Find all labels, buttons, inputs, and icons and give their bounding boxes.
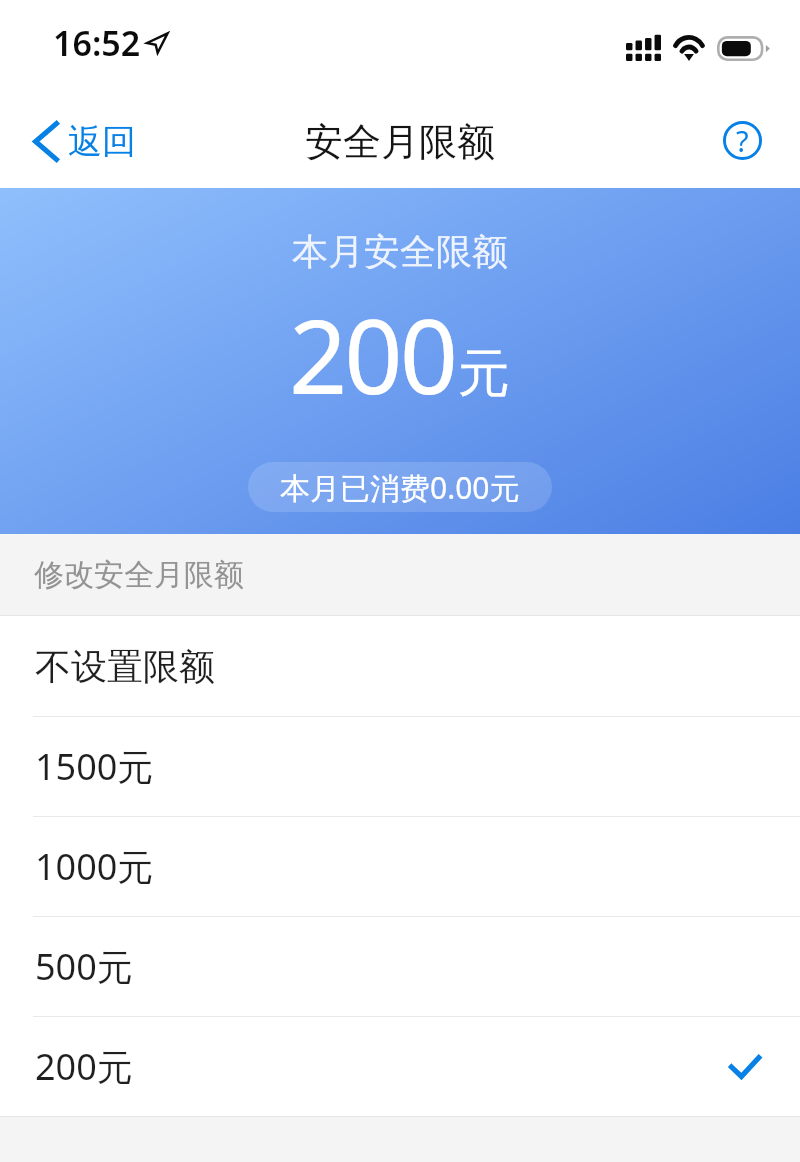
staticText: 修改安全月限额 (34, 556, 244, 594)
button[interactable]: 返回 (0, 106, 154, 177)
staticText: 500元 (35, 942, 133, 991)
staticText: 不设置限额 (35, 644, 215, 689)
staticText: 本月已消费0.00元 (280, 467, 520, 508)
button[interactable]: 500元 (0, 917, 800, 1016)
button[interactable]: 不设置限额 (0, 616, 800, 716)
button[interactable]: 1500元 (0, 717, 800, 816)
staticText: 1000元 (35, 842, 154, 891)
staticText: 16:52 (53, 20, 141, 66)
staticText: 返回 (68, 120, 136, 163)
staticText: 200元 (35, 1042, 133, 1091)
staticText: 元 (458, 341, 510, 407)
button[interactable]: 200元 (0, 1017, 800, 1116)
staticText: ? (736, 121, 749, 160)
button[interactable]: 1000元 (0, 817, 800, 916)
staticText: 1500元 (35, 742, 154, 791)
staticText: 本月安全限额 (292, 229, 508, 274)
staticText: 安全月限额 (305, 118, 495, 166)
button[interactable]: Help (713, 111, 771, 169)
staticText: 200 (289, 285, 456, 424)
